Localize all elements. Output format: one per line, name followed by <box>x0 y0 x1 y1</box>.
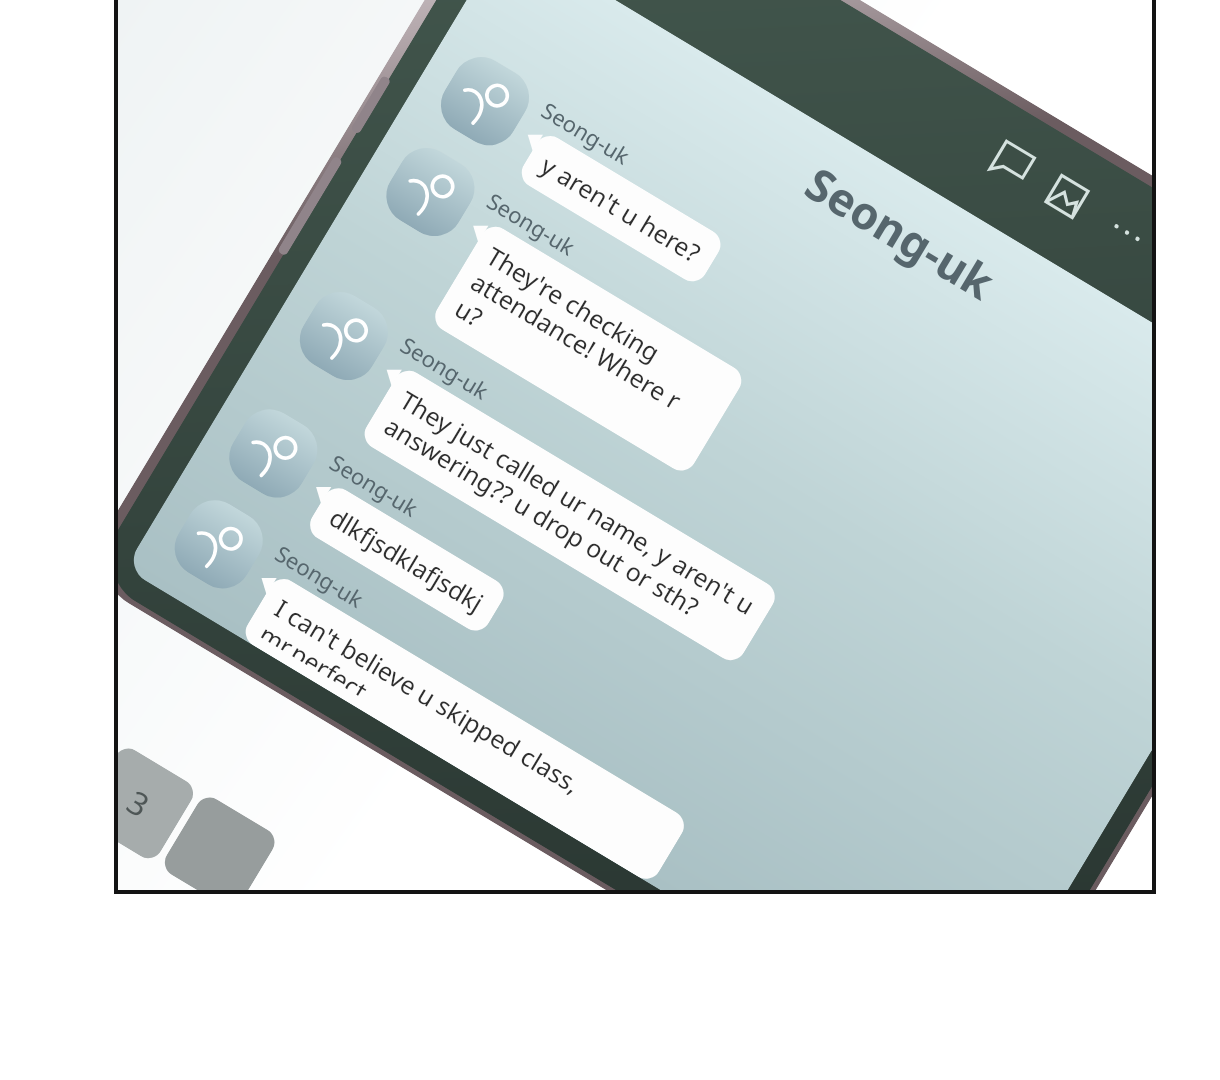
staticText: They just called ur name, y aren't u ans… <box>378 382 761 648</box>
button[interactable]: Profile picture <box>149 489 1000 890</box>
button[interactable]: Profile picture <box>218 398 328 508</box>
button[interactable]: Profile picture <box>430 46 540 156</box>
staticText: Seong-uk <box>536 95 636 171</box>
staticText: Seong-uk <box>270 538 370 614</box>
button[interactable]: Profile picture <box>338 137 1152 745</box>
button[interactable]: Profile picture <box>164 489 274 599</box>
staticText: Seong-uk <box>482 185 581 262</box>
staticText: They're checking attendance! Where r u? <box>449 238 728 459</box>
button[interactable]: More options <box>1097 202 1152 263</box>
staticText: Seong-uk <box>395 329 495 406</box>
button[interactable]: Profile picture <box>268 281 1126 863</box>
staticText: dlkfjsdklafjsdkj <box>323 500 490 619</box>
button[interactable]: Profile picture <box>213 398 1055 890</box>
staticText: I can't believe u skipped class, mr.perf… <box>259 591 670 867</box>
button[interactable]: Gallery <box>1037 166 1097 227</box>
button[interactable]: Chat <box>982 133 1042 194</box>
button[interactable]: Profile picture <box>289 281 399 391</box>
staticText: 3 <box>119 780 158 827</box>
button[interactable]: Profile picture <box>425 46 1152 601</box>
staticText: y aren't u here? <box>535 148 707 270</box>
staticText: Seong-uk <box>795 152 1006 313</box>
staticText: Seong-uk <box>325 447 424 523</box>
button[interactable]: Profile picture <box>375 137 485 247</box>
